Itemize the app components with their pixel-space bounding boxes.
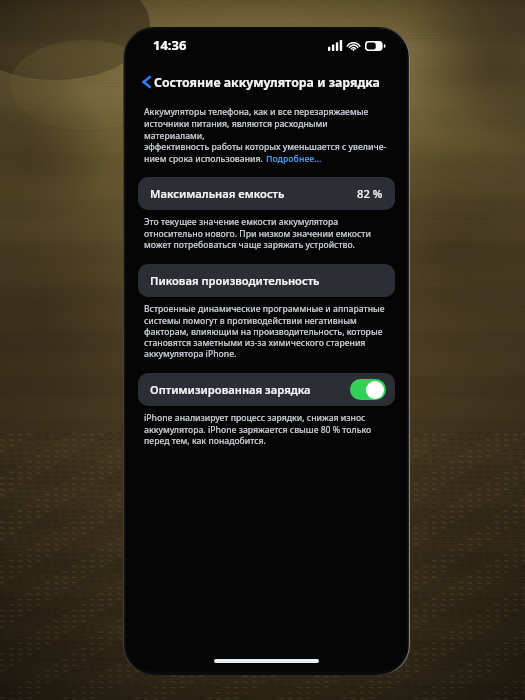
button[interactable]: Подробнее… <box>266 153 322 165</box>
staticText: Оптимизированная зарядка <box>150 382 311 397</box>
staticText: Встроенные динамические программные и ап… <box>144 303 385 359</box>
staticText: эффективность работы которых уменьшается… <box>144 141 387 153</box>
button[interactable]: Пиковая производительность <box>138 264 395 297</box>
staticText: источники питания, являются расходными м… <box>144 118 389 141</box>
button[interactable]: Оптимизированная зарядка <box>138 373 395 406</box>
staticText: Пиковая производительность <box>150 273 320 288</box>
button[interactable]: Оптимизированная зарядка, включено <box>350 379 386 400</box>
staticText: Аккумуляторы телефона, как и все перезар… <box>144 106 369 118</box>
staticText: Максимальная емкость <box>150 186 285 201</box>
button[interactable]: Максимальная емкость <box>138 177 395 210</box>
staticText: iPhone анализирует процесс зарядки, сниж… <box>144 412 372 446</box>
staticText: Состояние аккумулятора и зарядка <box>154 74 380 91</box>
staticText: Это текущее значение емкости аккумулятор… <box>144 216 371 250</box>
staticText: 14:36 <box>153 36 187 54</box>
staticText: 82 % <box>357 186 383 201</box>
staticText: нием срока использования. <box>144 153 266 165</box>
button[interactable]: Назад <box>134 69 160 95</box>
